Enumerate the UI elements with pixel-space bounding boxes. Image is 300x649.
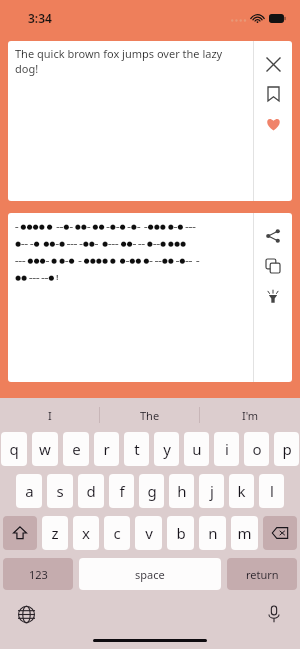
- staticText: o: [252, 439, 262, 459]
- staticText: i: [225, 439, 229, 459]
- button[interactable]: x: [73, 516, 99, 550]
- button[interactable]: p: [274, 432, 299, 466]
- staticText: x: [82, 523, 90, 543]
- button[interactable]: n: [199, 516, 226, 550]
- staticText: 3:34: [28, 10, 52, 26]
- button[interactable]: g: [139, 474, 164, 508]
- button[interactable]: 123: [3, 558, 73, 590]
- staticText: ––– ●●●– ● ●–● – ●●●● ● ●–●● ●– ––●● –●–…: [15, 256, 200, 266]
- button[interactable]: Bookmark: [254, 79, 292, 109]
- staticText: I'm: [242, 408, 259, 423]
- staticText: 123: [29, 567, 48, 582]
- staticText: d: [86, 481, 96, 501]
- button[interactable]: Close: [254, 49, 292, 79]
- staticText: w: [39, 439, 51, 459]
- staticText: The: [140, 408, 160, 423]
- button[interactable]: Backspace: [263, 516, 297, 550]
- staticText: return: [246, 567, 279, 582]
- button[interactable]: The quick brown fox jumps over the lazy …: [8, 41, 253, 201]
- button[interactable]: d: [78, 474, 104, 508]
- button[interactable]: Change keyboard: [12, 600, 40, 628]
- staticText: z: [51, 523, 59, 543]
- staticText: p: [282, 439, 292, 459]
- staticText: s: [56, 481, 64, 501]
- staticText: k: [237, 481, 246, 501]
- button[interactable]: r: [94, 432, 119, 466]
- button[interactable]: a: [16, 474, 42, 508]
- button[interactable]: – ●●●● ● ––●– ●●– ●● –●–● –●– –●●● ●–● –…: [8, 213, 253, 382]
- staticText: r: [103, 439, 110, 459]
- staticText: n: [208, 523, 218, 543]
- staticText: e: [72, 439, 81, 459]
- button[interactable]: v: [135, 516, 162, 550]
- button[interactable]: Shift: [3, 516, 37, 550]
- button[interactable]: space: [79, 558, 221, 590]
- button[interactable]: w: [32, 432, 58, 466]
- button[interactable]: h: [169, 474, 194, 508]
- staticText: g: [147, 481, 157, 501]
- button[interactable]: j: [199, 474, 224, 508]
- staticText: f: [119, 481, 125, 501]
- button[interactable]: c: [104, 516, 130, 550]
- button[interactable]: b: [167, 516, 194, 550]
- staticText: ●–– –● ●●–● ––– –●●– ●––– ●●– –– ●––● ●●…: [15, 239, 187, 249]
- button[interactable]: Share: [254, 221, 292, 251]
- staticText: c: [113, 523, 121, 543]
- button[interactable]: y: [154, 432, 179, 466]
- staticText: b: [176, 523, 186, 543]
- button[interactable]: i: [214, 432, 239, 466]
- staticText: v: [145, 523, 153, 543]
- button[interactable]: Copy: [254, 251, 292, 281]
- staticText: – ●●●● ● ––●– ●●– ●● –●–● –●– –●●● ●–● –…: [15, 222, 196, 232]
- button[interactable]: t: [124, 432, 149, 466]
- staticText: u: [192, 439, 202, 459]
- button[interactable]: Favorite: [254, 109, 292, 139]
- button[interactable]: z: [42, 516, 68, 550]
- button[interactable]: I'm: [200, 398, 300, 432]
- staticText: q: [9, 439, 19, 459]
- staticText: l: [270, 481, 274, 501]
- button[interactable]: q: [1, 432, 27, 466]
- button[interactable]: e: [63, 432, 89, 466]
- staticText: t: [134, 439, 140, 459]
- button[interactable]: The: [100, 398, 200, 432]
- staticText: space: [135, 567, 165, 582]
- button[interactable]: f: [109, 474, 134, 508]
- button[interactable]: return: [227, 558, 297, 590]
- staticText: j: [210, 481, 214, 501]
- button[interactable]: Dictation: [260, 600, 288, 628]
- staticText: a: [25, 481, 34, 501]
- button[interactable]: m: [231, 516, 258, 550]
- button[interactable]: I: [0, 398, 100, 432]
- staticText: I: [48, 408, 52, 423]
- staticText: h: [177, 481, 187, 501]
- button[interactable]: k: [229, 474, 254, 508]
- staticText: ●● ––– ––● !: [15, 273, 59, 283]
- staticText: y: [163, 439, 171, 459]
- button[interactable]: Flashlight: [254, 281, 292, 311]
- staticText: The quick brown fox jumps over the lazy …: [15, 46, 247, 76]
- button[interactable]: l: [259, 474, 284, 508]
- button[interactable]: s: [47, 474, 73, 508]
- staticText: m: [237, 523, 252, 543]
- button[interactable]: o: [244, 432, 269, 466]
- button[interactable]: u: [184, 432, 209, 466]
